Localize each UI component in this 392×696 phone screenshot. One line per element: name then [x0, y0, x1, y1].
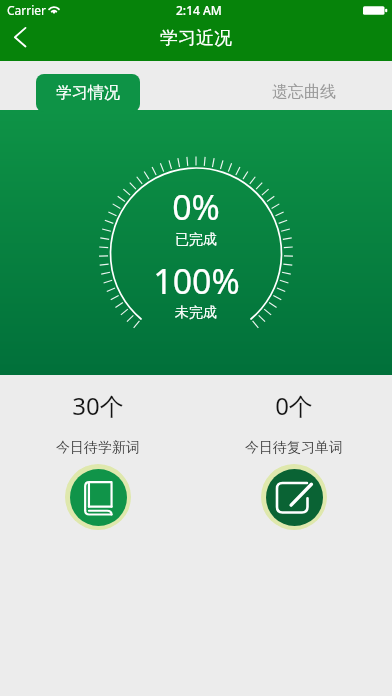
- button[interactable]: 0个: [196, 375, 392, 530]
- staticText: 0%: [172, 184, 220, 230]
- staticText: 30个: [72, 389, 124, 422]
- staticText: 学习近况: [160, 27, 232, 50]
- staticText: Carrier: [7, 2, 47, 18]
- staticText: 学习情况: [56, 83, 120, 103]
- staticText: 未完成: [175, 304, 217, 322]
- staticText: 0个: [275, 389, 313, 422]
- staticText: 2:14 AM: [176, 2, 222, 18]
- staticText: 今日待学新词: [56, 439, 140, 457]
- staticText: 遗忘曲线: [272, 82, 336, 102]
- button[interactable]: Back: [0, 20, 46, 61]
- staticText: 已完成: [175, 231, 217, 249]
- staticText: 今日待复习单词: [245, 439, 343, 457]
- button[interactable]: 遗忘曲线: [252, 74, 356, 110]
- button[interactable]: 学习情况: [36, 74, 140, 112]
- button[interactable]: 30个: [0, 375, 196, 530]
- staticText: 100%: [153, 258, 240, 304]
